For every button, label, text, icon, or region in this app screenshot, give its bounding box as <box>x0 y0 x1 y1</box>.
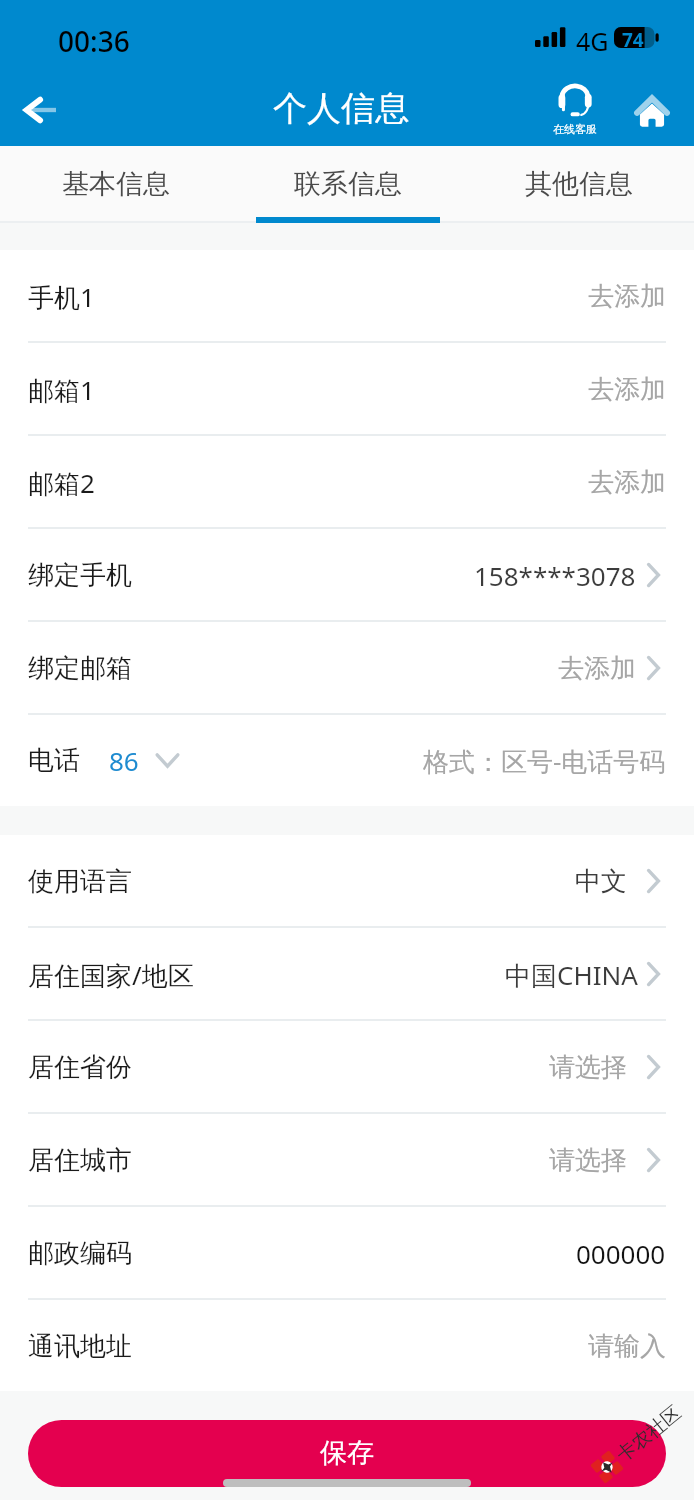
button[interactable]: 手机1 <box>0 250 694 343</box>
staticText: 请输入 <box>588 1330 666 1363</box>
staticText: 158****3078 <box>474 558 636 593</box>
button[interactable]: 联系信息 <box>232 146 463 223</box>
staticText: 绑定邮箱 <box>28 652 132 685</box>
staticText: 电话 <box>28 744 80 777</box>
button[interactable]: Back <box>0 70 76 146</box>
staticText: 联系信息 <box>294 167 402 201</box>
button[interactable]: 居住国家/地区 <box>0 928 694 1021</box>
button[interactable]: 电话 <box>0 715 694 806</box>
staticText: 去添加 <box>588 466 666 499</box>
staticText: 通讯地址 <box>28 1330 132 1363</box>
staticText: 居住国家/地区 <box>28 957 194 993</box>
staticText: 在线客服 <box>553 122 597 136</box>
button[interactable]: Home <box>632 90 672 130</box>
staticText: 74 <box>622 27 644 48</box>
staticText: 居住省份 <box>28 1051 132 1084</box>
staticText: 基本信息 <box>62 167 170 201</box>
staticText: 邮箱2 <box>28 465 95 501</box>
staticText: 手机1 <box>28 279 95 315</box>
staticText: 卡农社区 <box>612 1401 686 1467</box>
staticText: 000000 <box>576 1236 666 1271</box>
staticText: 中文 <box>575 865 627 898</box>
staticText: 请选择 <box>549 1144 627 1177</box>
staticText: 请选择 <box>549 1051 627 1084</box>
button[interactable]: 通讯地址 <box>0 1300 694 1391</box>
staticText: 去添加 <box>558 652 636 685</box>
staticText: 86 <box>109 743 139 778</box>
staticText: 00:36 <box>58 22 130 60</box>
staticText: 其他信息 <box>525 167 633 201</box>
button[interactable]: 邮箱2 <box>0 436 694 529</box>
button[interactable]: 邮箱1 <box>0 343 694 436</box>
button[interactable]: 使用语言 <box>0 835 694 928</box>
staticText: 居住城市 <box>28 1144 132 1177</box>
staticText: 中国CHINA <box>505 957 638 993</box>
button[interactable]: 其他信息 <box>463 146 694 223</box>
button[interactable]: 绑定邮箱 <box>0 622 694 715</box>
staticText: 格式：区号-电话号码 <box>423 743 666 779</box>
button[interactable]: 基本信息 <box>0 146 232 223</box>
staticText: 使用语言 <box>28 865 132 898</box>
button[interactable]: 居住城市 <box>0 1114 694 1207</box>
button[interactable]: 绑定手机 <box>0 529 694 622</box>
button[interactable]: 邮政编码 <box>0 1207 694 1300</box>
staticText: 去添加 <box>588 280 666 313</box>
staticText: 邮政编码 <box>28 1237 132 1270</box>
staticText: 4G <box>576 24 609 58</box>
staticText: 保存 <box>320 1436 374 1470</box>
staticText: 个人信息 <box>273 87 409 130</box>
staticText: 邮箱1 <box>28 372 95 408</box>
staticText: 绑定手机 <box>28 559 132 592</box>
button[interactable]: 保存 <box>28 1420 666 1487</box>
staticText: 去添加 <box>588 373 666 406</box>
button[interactable]: 居住省份 <box>0 1021 694 1114</box>
button[interactable]: Online customer service <box>541 70 609 146</box>
